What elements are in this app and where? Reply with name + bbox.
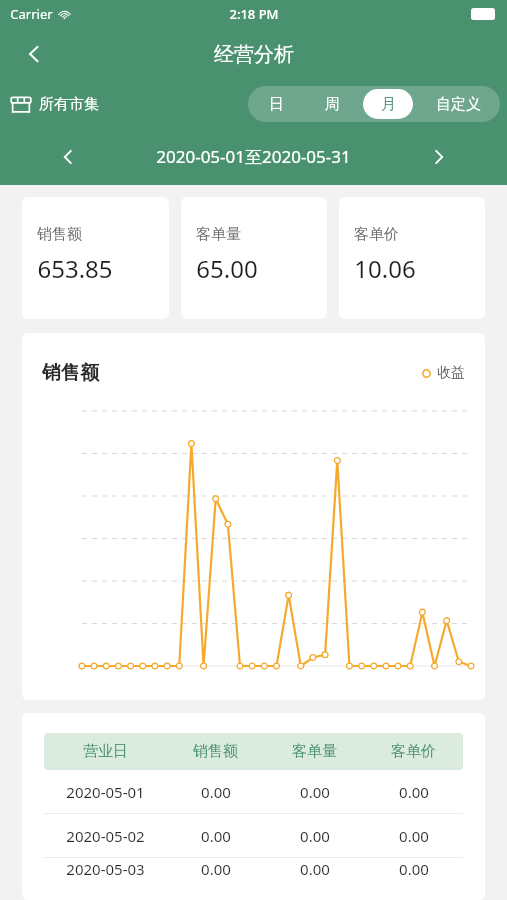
staticText: 销售额	[193, 742, 238, 761]
button[interactable]: 月	[363, 89, 413, 119]
staticText: 0.00	[399, 859, 429, 879]
staticText: 2020-05-01	[66, 782, 145, 802]
staticText: Carrier	[10, 5, 53, 23]
staticText: 收益	[437, 364, 465, 382]
staticText: 0.00	[201, 782, 231, 802]
staticText: 客单量	[292, 742, 337, 761]
button[interactable]: Previous period	[50, 139, 86, 175]
staticText: 月	[381, 95, 396, 114]
button[interactable]: 2020-05-03	[44, 858, 463, 880]
staticText: 经营分析	[214, 42, 294, 67]
button[interactable]: Next period	[421, 139, 457, 175]
staticText: 自定义	[436, 95, 481, 114]
staticText: 2020-05-01至2020-05-31	[156, 145, 351, 168]
staticText: 0.00	[300, 782, 330, 802]
staticText: 2:18 PM	[229, 5, 279, 23]
staticText: 653.85	[37, 252, 113, 285]
staticText: 0.00	[201, 826, 231, 846]
button[interactable]: 日	[251, 89, 301, 119]
staticText: 销售额	[42, 361, 99, 385]
staticText: 日	[269, 95, 284, 114]
staticText: 0.00	[399, 826, 429, 846]
button[interactable]: 2020-05-02	[44, 814, 463, 857]
staticText: 0.00	[201, 859, 231, 879]
button[interactable]: 所有市集	[10, 93, 99, 115]
staticText: 周	[325, 95, 340, 114]
staticText: 营业日	[83, 742, 128, 761]
staticText: 客单量	[196, 225, 241, 244]
staticText: 2020-05-03	[66, 859, 145, 879]
button[interactable]: 客单价	[339, 197, 485, 319]
staticText: 所有市集	[39, 95, 99, 114]
button[interactable]: 自定义	[419, 89, 497, 119]
button[interactable]: Back	[14, 34, 54, 74]
staticText: 0.00	[300, 859, 330, 879]
staticText: 客单价	[391, 742, 436, 761]
staticText: 0.00	[300, 826, 330, 846]
button[interactable]: 客单量	[181, 197, 327, 319]
staticText: 销售额	[37, 225, 82, 244]
button[interactable]: 销售额	[22, 197, 169, 319]
staticText: 0.00	[399, 782, 429, 802]
button[interactable]: 周	[307, 89, 357, 119]
staticText: 2020-05-02	[66, 826, 145, 846]
button[interactable]: 收益	[422, 364, 465, 382]
button[interactable]: 2020-05-01	[44, 770, 463, 813]
staticText: 10.06	[354, 252, 416, 285]
staticText: 65.00	[196, 252, 258, 285]
staticText: 客单价	[354, 225, 399, 244]
